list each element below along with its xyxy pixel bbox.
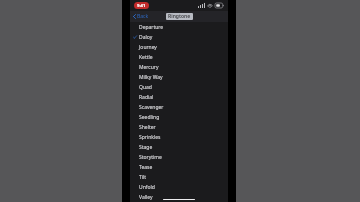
button[interactable]: Journey (130, 42, 228, 52)
staticText: Radial (139, 94, 154, 101)
staticText: Back (137, 13, 149, 20)
staticText: Storytime (139, 154, 162, 161)
button[interactable]: Tilt (130, 172, 228, 182)
button[interactable]: Valley (130, 192, 228, 202)
button[interactable]: Sprinkles (130, 132, 228, 142)
button[interactable]: Stage (130, 142, 228, 152)
other: Selected (133, 35, 137, 39)
staticText: Scavenger (139, 104, 164, 111)
staticText: Valley (139, 194, 153, 201)
staticText: Sprinkles (139, 134, 161, 141)
staticText: Tease (139, 164, 153, 171)
staticText: Seedling (139, 114, 160, 121)
staticText: Kettle (139, 54, 153, 61)
staticText: Departure (139, 24, 164, 31)
button[interactable]: Tease (130, 162, 228, 172)
button[interactable]: Kettle (130, 52, 228, 62)
staticText: 9:41 (137, 3, 146, 9)
staticText: Journey (139, 44, 157, 51)
button[interactable]: Mercury (130, 62, 228, 72)
button[interactable]: Storytime (130, 152, 228, 162)
staticText: Daloy (139, 34, 153, 41)
staticText: Unfold (139, 184, 155, 191)
staticText: Milky Way (139, 74, 163, 81)
staticText: Mercury (139, 64, 159, 71)
staticText: Shelter (139, 124, 156, 131)
button[interactable]: Scavenger (130, 102, 228, 112)
staticText: Tilt (139, 174, 147, 181)
button[interactable]: Seedling (130, 112, 228, 122)
staticText: Ringtone (168, 13, 191, 20)
button[interactable]: Quad (130, 82, 228, 92)
button[interactable]: Shelter (130, 122, 228, 132)
button[interactable]: Selected (130, 32, 228, 42)
button[interactable]: Back (130, 11, 152, 22)
staticText: Quad (139, 84, 152, 91)
button[interactable]: Unfold (130, 182, 228, 192)
button[interactable]: Milky Way (130, 72, 228, 82)
staticText: Stage (139, 144, 153, 151)
button[interactable]: Departure (130, 22, 228, 32)
button[interactable]: Radial (130, 92, 228, 102)
